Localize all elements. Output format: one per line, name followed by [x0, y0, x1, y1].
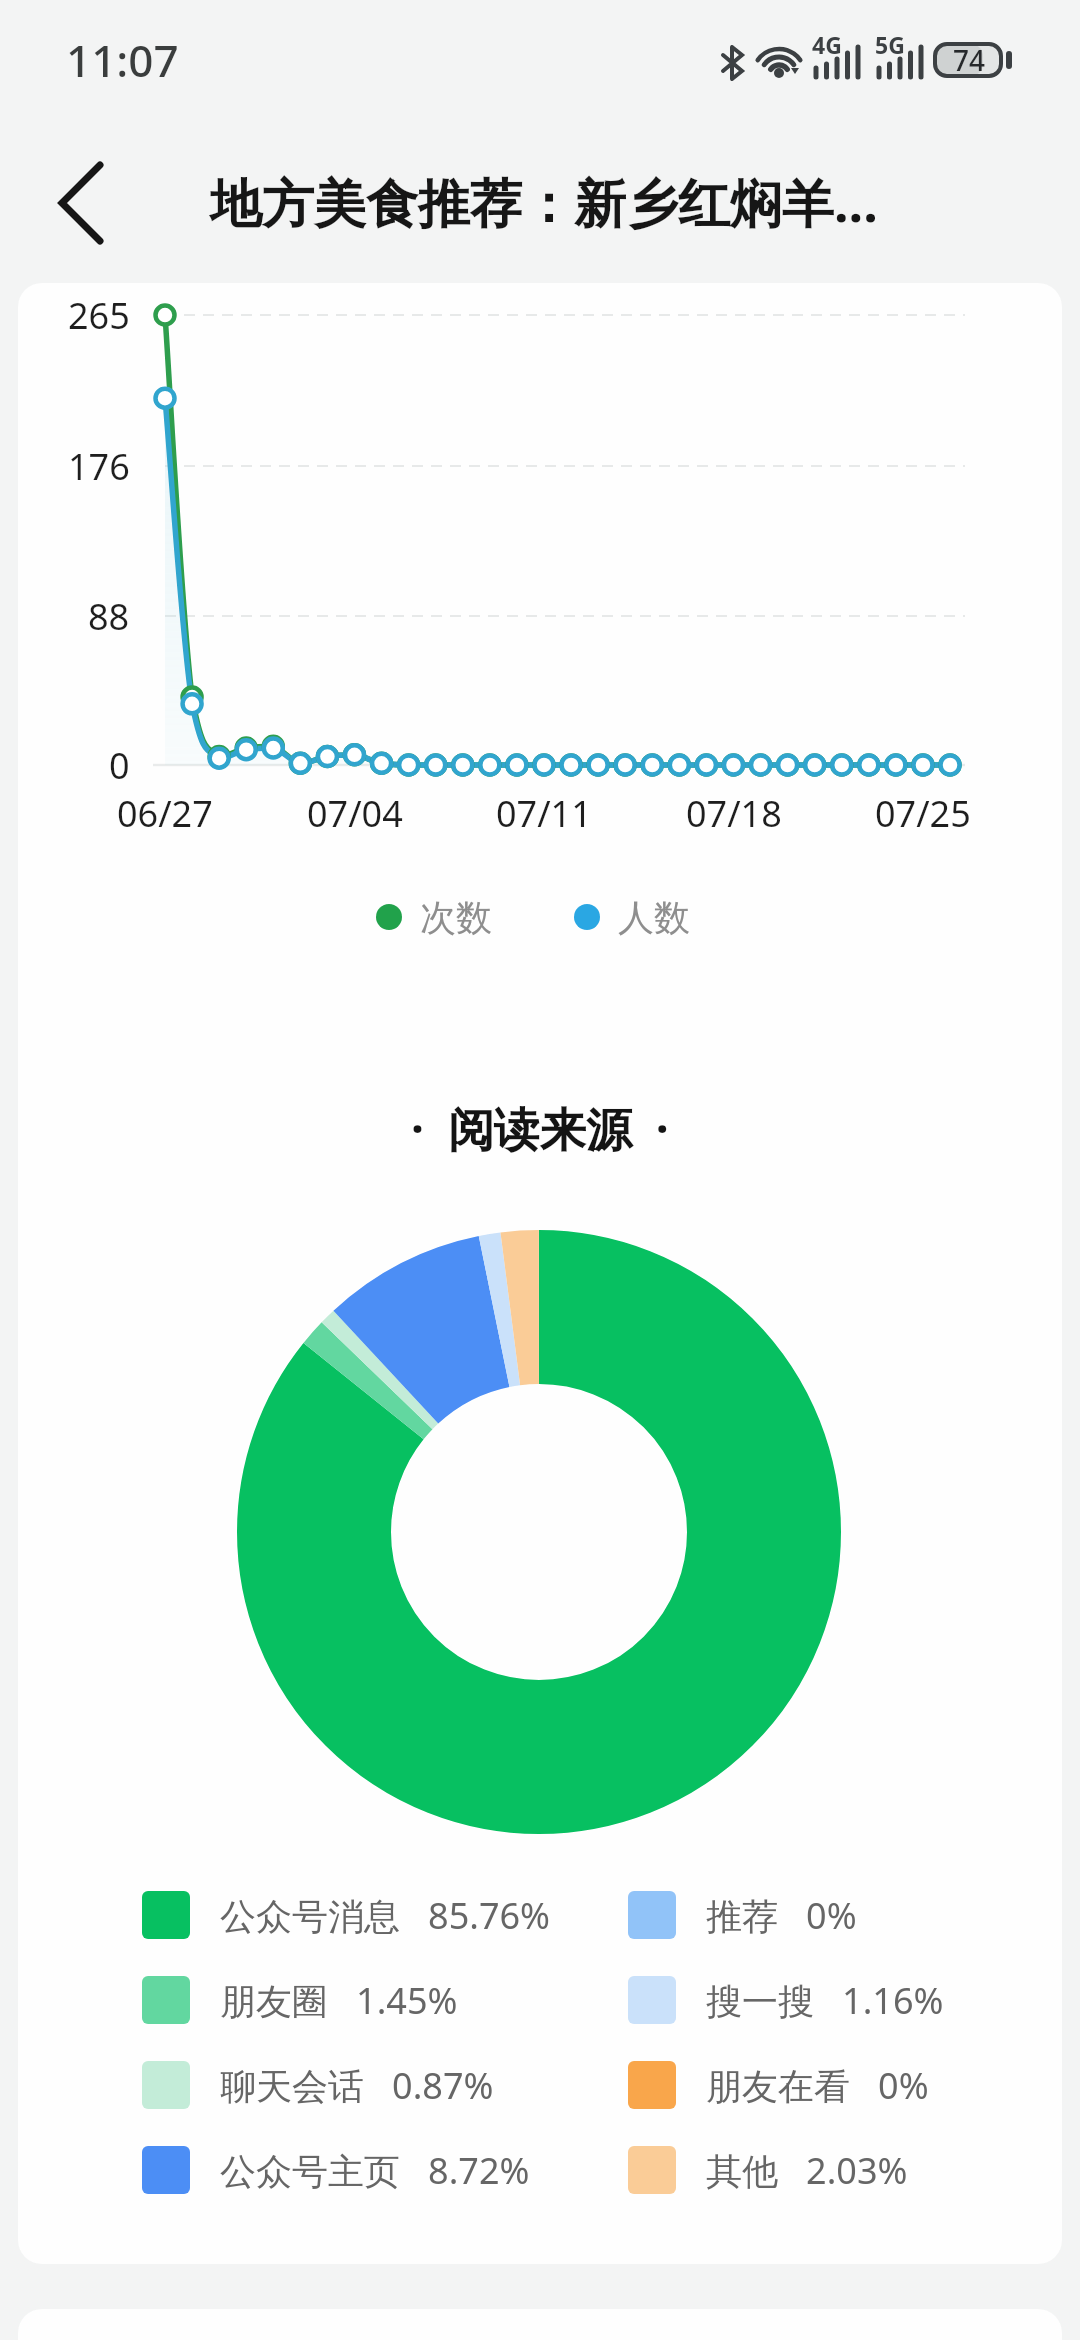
- button[interactable]: 次数: [376, 887, 492, 947]
- staticText: 聊天会话 0.87%: [220, 2061, 494, 2110]
- button[interactable]: 搜一搜 1.16%: [628, 1960, 944, 2040]
- button[interactable]: 朋友在看 0%: [628, 2045, 929, 2125]
- staticText: 0: [109, 741, 130, 790]
- staticText: 5G: [875, 29, 905, 60]
- staticText: · 阅读来源 ·: [411, 1097, 669, 1160]
- button[interactable]: [30, 160, 130, 246]
- staticText: 次数: [420, 895, 492, 940]
- staticText: 88: [88, 592, 130, 641]
- staticText: 朋友圈 1.45%: [220, 1976, 458, 2025]
- staticText: 74: [953, 41, 986, 79]
- staticText: 07/18: [686, 789, 782, 838]
- staticText: 其他 2.03%: [706, 2146, 908, 2195]
- staticText: 176: [68, 442, 130, 491]
- button[interactable]: 聊天会话 0.87%: [142, 2045, 494, 2125]
- staticText: 265: [68, 291, 130, 340]
- staticText: 朋友在看 0%: [706, 2061, 929, 2110]
- button[interactable]: 其他 2.03%: [628, 2130, 908, 2210]
- staticText: 07/11: [496, 789, 592, 838]
- staticText: 07/25: [875, 789, 971, 838]
- staticText: 07/04: [307, 789, 403, 838]
- staticText: 搜一搜 1.16%: [706, 1976, 944, 2025]
- button[interactable]: 朋友圈 1.45%: [142, 1960, 458, 2040]
- staticText: 推荐 0%: [706, 1891, 857, 1940]
- button[interactable]: 推荐 0%: [628, 1875, 857, 1955]
- staticText: 11:07: [66, 30, 179, 90]
- staticText: 4G: [812, 29, 842, 60]
- button[interactable]: 公众号消息 85.76%: [142, 1875, 551, 1955]
- button[interactable]: 公众号主页 8.72%: [142, 2130, 530, 2210]
- staticText: 地方美食推荐：新乡红焖羊...: [210, 166, 878, 237]
- staticText: 公众号消息 85.76%: [220, 1891, 551, 1940]
- staticText: 06/27: [117, 789, 213, 838]
- button[interactable]: 人数: [574, 887, 690, 947]
- staticText: 公众号主页 8.72%: [220, 2146, 530, 2195]
- staticText: 人数: [618, 895, 690, 940]
